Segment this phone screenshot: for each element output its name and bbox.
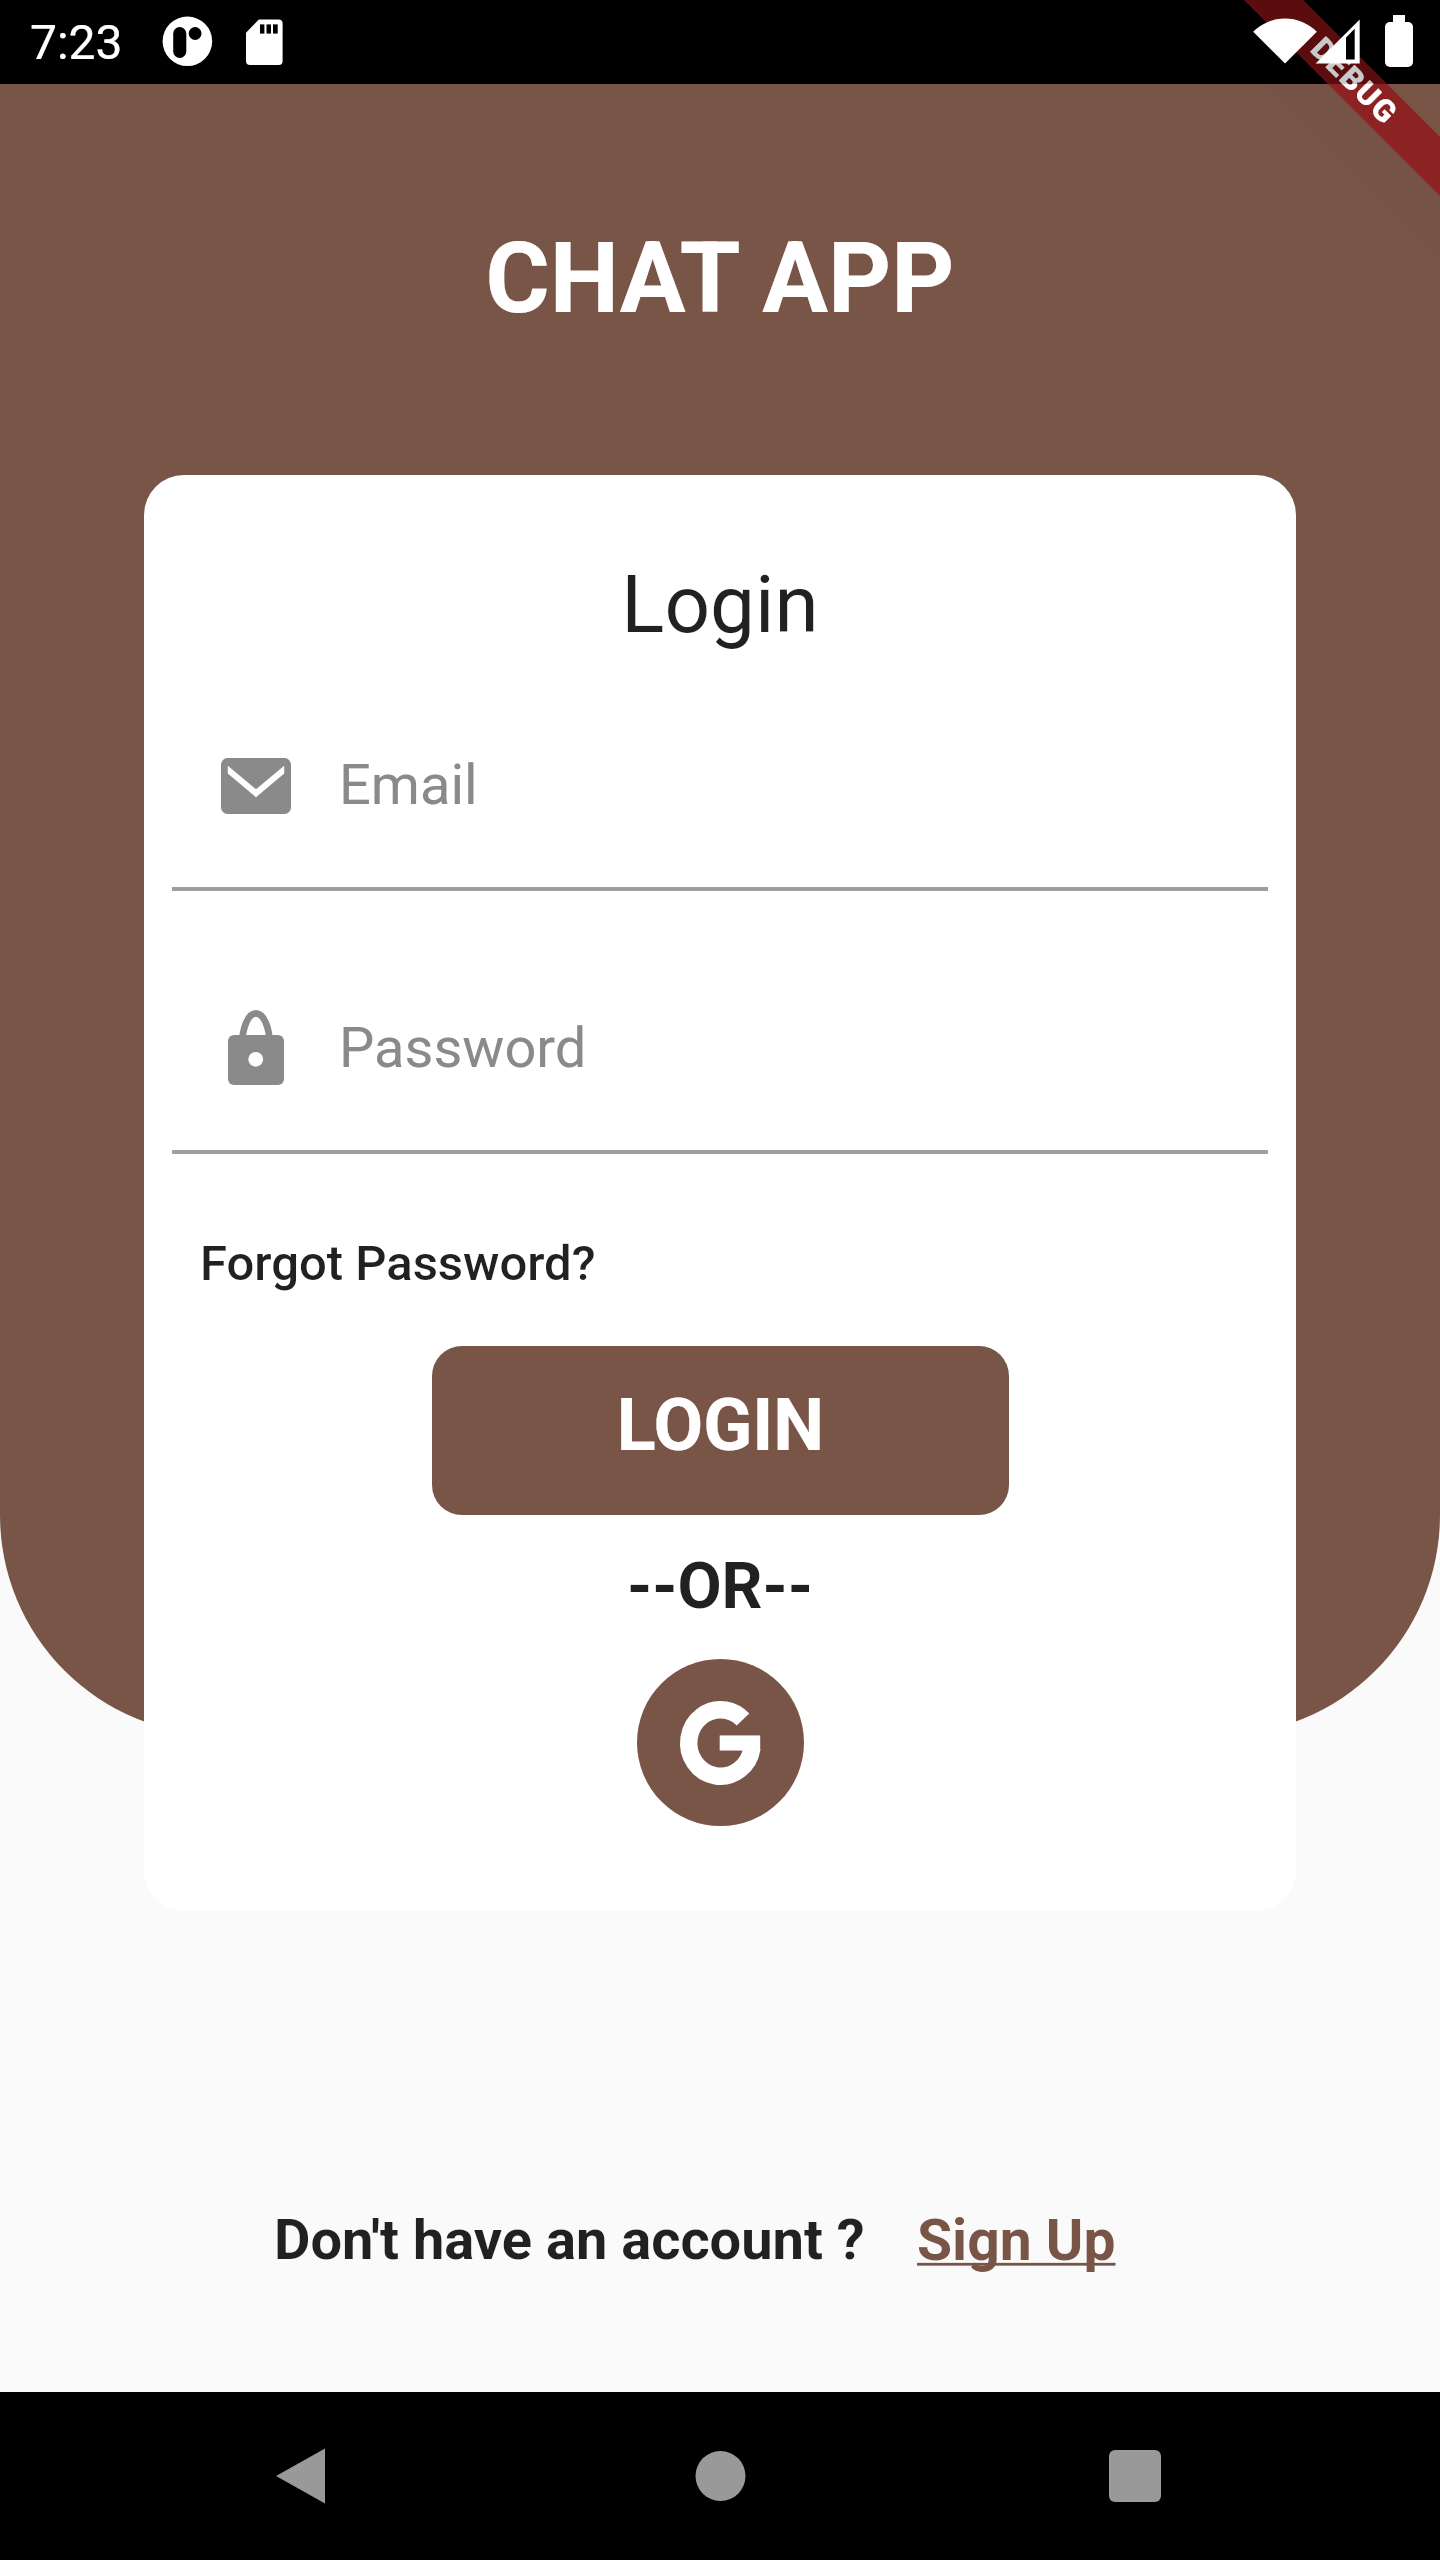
button[interactable]: Email <box>172 740 1268 890</box>
button[interactable]: Sign in with Google <box>637 1659 804 1826</box>
button[interactable]: LOGIN <box>432 1346 1009 1515</box>
button[interactable]: Password <box>172 1003 1268 1153</box>
staticText: --OR-- <box>0 1549 1440 1624</box>
staticText: Login <box>0 558 1440 652</box>
staticText: LOGIN <box>432 1383 1009 1467</box>
staticText: CHAT APP <box>0 221 1440 336</box>
button[interactable]: Sign Up <box>917 2207 1116 2274</box>
staticText: Password <box>339 1015 587 1081</box>
button[interactable]: Forgot Password? <box>200 1235 596 1292</box>
staticText: Don't have an account ? <box>274 2207 865 2273</box>
staticText: 7:23 <box>30 14 123 70</box>
staticText: Email <box>339 752 478 818</box>
